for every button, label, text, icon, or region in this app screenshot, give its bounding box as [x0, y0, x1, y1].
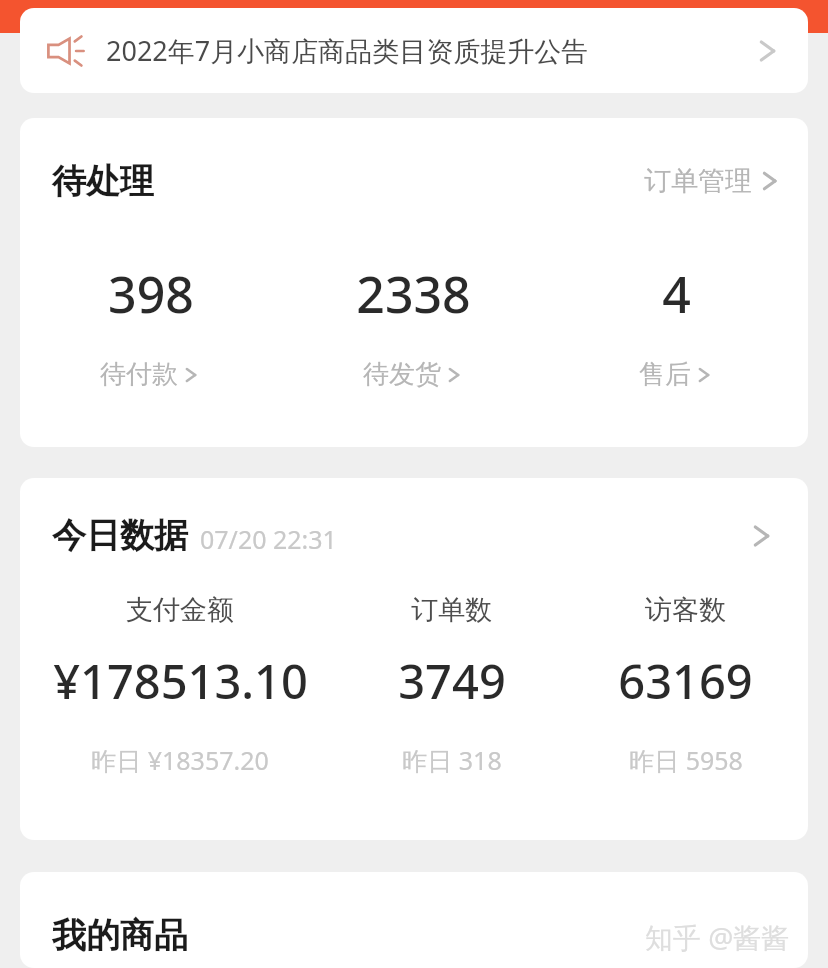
button[interactable]: 订单管理 [644, 164, 784, 198]
button[interactable]: 2338 [282, 244, 545, 391]
staticText: ¥178513.10 [53, 649, 308, 713]
staticText: 订单管理 [644, 164, 752, 198]
button[interactable]: 我的商品 [20, 872, 808, 968]
staticText: 待发货 [363, 358, 441, 391]
button[interactable]: 398 [20, 244, 282, 391]
button[interactable]: 4 [545, 244, 808, 391]
staticText: 待付款 [100, 358, 178, 391]
staticText: 订单数 [411, 593, 492, 627]
staticText: 待处理 [52, 160, 154, 203]
staticText: 2022年7月小商店商品类目资质提升公告 [106, 32, 589, 69]
staticText: 4 [662, 260, 691, 328]
other: Announcement [44, 29, 88, 73]
button[interactable]: 访客数 [571, 593, 800, 777]
staticText: 今日数据 [52, 514, 188, 557]
staticText: 我的商品 [52, 914, 188, 957]
staticText: 昨日 5958 [629, 743, 743, 777]
staticText: 售后 [639, 358, 691, 391]
staticText: 昨日 318 [402, 743, 502, 777]
staticText: 昨日 ¥18357.20 [91, 743, 269, 777]
staticText: 398 [108, 260, 194, 328]
staticText: 知乎 @酱酱 [645, 918, 790, 956]
button[interactable]: 订单数 [332, 593, 571, 777]
staticText: 访客数 [645, 593, 726, 627]
staticText: 63169 [618, 649, 753, 713]
staticText: 支付金额 [126, 593, 234, 627]
staticText: 3749 [398, 649, 506, 713]
button[interactable]: 支付金额 [28, 593, 332, 777]
staticText: 07/20 22:31 [200, 522, 337, 556]
staticText: 2338 [356, 260, 471, 328]
button[interactable]: 今日数据 [20, 478, 808, 593]
button[interactable]: Announcement [20, 8, 808, 93]
